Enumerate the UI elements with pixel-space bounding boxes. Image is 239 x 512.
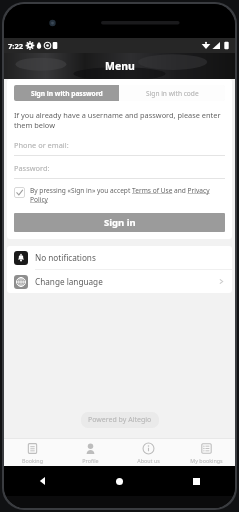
staticText: Sign in with code: [146, 89, 199, 98]
staticText: 7:22: [8, 41, 23, 51]
staticText: Profile: [82, 457, 99, 464]
staticText: My bookings: [190, 457, 223, 464]
staticText: About us: [137, 457, 160, 464]
button[interactable]: About us: [119, 439, 177, 466]
staticText: If you already have a username and passw…: [14, 110, 225, 130]
staticText: By pressing «Sign in» you accept Terms o…: [30, 186, 225, 204]
button[interactable]: Powered by Altegio: [81, 412, 159, 428]
staticText: Sign in: [104, 216, 136, 229]
button[interactable]: Recent apps: [158, 466, 235, 496]
staticText: Booking: [22, 457, 43, 464]
staticText: No notifications: [35, 252, 96, 263]
button[interactable]: Booking: [4, 439, 61, 466]
button[interactable]: My bookings: [177, 439, 235, 466]
button[interactable]: Sign in with code: [119, 85, 225, 101]
staticText: Menu: [105, 59, 135, 73]
button[interactable]: No notifications: [7, 246, 232, 269]
button[interactable]: By pressing «Sign in» you accept Terms o…: [14, 186, 225, 204]
button[interactable]: Home: [81, 466, 158, 496]
staticText: Change language: [35, 276, 103, 287]
staticText: Phone or email:: [14, 140, 69, 150]
staticText: Sign in with password: [31, 89, 103, 98]
button[interactable]: Change language: [7, 270, 232, 293]
button[interactable]: Sign in with password: [14, 85, 119, 101]
staticText: Password:: [14, 163, 50, 173]
button[interactable]: Sign in: [14, 213, 225, 232]
button[interactable]: Back: [4, 466, 81, 496]
staticText: Powered by Altegio: [88, 415, 152, 425]
button[interactable]: Profile: [61, 439, 119, 466]
